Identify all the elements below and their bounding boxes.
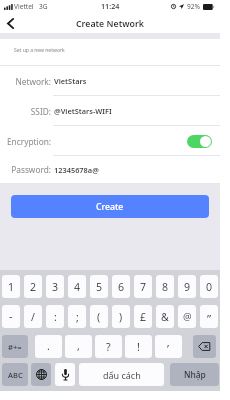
staticText: Create [96,201,124,213]
button[interactable]: - [2,305,20,328]
staticText: ABC [8,370,23,380]
button[interactable]: 9 [178,275,196,298]
staticText: Set up a new network [14,47,65,54]
staticText: £ [140,310,147,324]
staticText: dấu cách [103,369,141,381]
button[interactable]: : [46,305,64,328]
button[interactable]: 3 [46,275,64,298]
staticText: ! [137,340,140,354]
staticText: 5 [96,280,103,294]
button[interactable]: @ [178,305,196,328]
staticText: 0 [206,280,213,294]
staticText: & [161,310,169,324]
staticText: 4 [74,280,81,294]
staticText: 92% [187,2,201,11]
button[interactable]: Nhập [170,363,219,386]
button[interactable]: . [35,335,62,358]
staticText: SSID: [0,106,51,117]
button[interactable]: Password: [0,156,220,183]
button[interactable]: Back [0,14,20,33]
staticText: 11:24 [101,1,120,11]
staticText: Password: [0,164,51,175]
button[interactable]: ABC [2,363,28,386]
button[interactable]: 0 [200,275,218,298]
button[interactable]: , [65,335,92,358]
button[interactable]: / [24,305,42,328]
staticText: ’ [167,341,170,357]
staticText: VietStars [54,76,87,86]
button[interactable]: Create [11,195,209,218]
staticText: @VietStars-WIFI [54,106,112,116]
staticText: @ [183,310,192,323]
staticText: 3 [52,280,59,294]
button[interactable] [193,335,216,358]
staticText: ) [119,310,123,324]
button[interactable] [55,363,75,386]
staticText: Encryption: [0,136,51,147]
button[interactable]: #+= [2,335,28,358]
staticText: 7 [140,280,147,294]
button[interactable]: & [156,305,174,328]
button[interactable]: 2 [24,275,42,298]
button[interactable]: ; [68,305,86,328]
staticText: . [47,339,50,353]
staticText: , [77,339,80,353]
button[interactable]: ) [112,305,130,328]
staticText: Viettel [14,2,34,11]
staticText: : [54,310,57,324]
button[interactable]: ( [90,305,108,328]
button[interactable]: 7 [134,275,152,298]
button[interactable]: 6 [112,275,130,298]
staticText: ( [97,310,101,324]
button[interactable]: £ [134,305,152,328]
staticText: #+= [8,342,22,352]
button[interactable]: Network: [0,66,220,96]
staticText: 1 [8,280,15,294]
button[interactable]: ’ [155,335,182,358]
button[interactable]: SSID: [0,96,220,126]
staticText: Create Network [76,18,144,30]
staticText: Nhập [184,369,206,380]
staticText: Network: [0,76,51,87]
button[interactable]: 5 [90,275,108,298]
button[interactable]: 4 [68,275,86,298]
button[interactable] [31,363,51,386]
staticText: - [9,309,13,323]
button[interactable]: ! [125,335,152,358]
staticText: 9 [184,280,191,294]
button[interactable]: ” [200,305,218,328]
staticText: ; [76,310,79,324]
button[interactable]: 1 [2,275,20,298]
staticText: / [31,310,35,324]
button[interactable]: 8 [156,275,174,298]
button[interactable]: ? [95,335,122,358]
button[interactable]: dấu cách [79,363,164,386]
button[interactable]: Encryption toggle [187,135,212,148]
staticText: ? [106,340,111,354]
staticText: 2 [30,280,37,294]
staticText: 8 [162,280,169,294]
staticText: 6 [118,280,125,294]
staticText: 12345678a@ [54,165,99,175]
staticText: ” [207,311,212,327]
staticText: 3G [39,2,48,11]
